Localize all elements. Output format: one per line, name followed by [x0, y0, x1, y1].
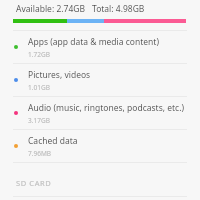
staticText: 1.01GB: [28, 83, 50, 92]
button[interactable]: Apps (app data & media content): [0, 31, 200, 63]
staticText: 3.17GB: [28, 116, 50, 125]
staticText: Available: 2.74GB: [16, 3, 85, 15]
staticText: Audio (music, ringtones, podcasts, etc.): [28, 102, 184, 114]
button[interactable]: Audio (music, ringtones, podcasts, etc.): [0, 97, 200, 129]
staticText: Total: 4.98GB: [92, 3, 145, 15]
staticText: 1.72GB: [28, 50, 50, 59]
staticText: SD CARD: [16, 178, 52, 188]
staticText: Cached data: [28, 135, 78, 147]
button[interactable]: Cached data: [0, 130, 200, 162]
staticText: Apps (app data & media content): [28, 36, 159, 48]
staticText: 7.96MB: [28, 149, 52, 158]
button[interactable]: Pictures, videos: [0, 64, 200, 96]
staticText: Pictures, videos: [28, 69, 91, 81]
